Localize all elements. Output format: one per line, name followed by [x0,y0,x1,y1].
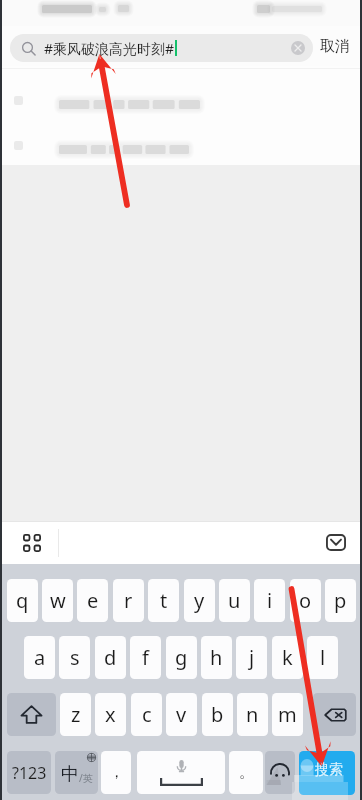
staticText: r [124,587,133,614]
staticText: h [210,644,223,671]
button[interactable]: v [166,693,197,736]
button[interactable]: b [202,693,233,736]
button[interactable]: j [236,636,267,679]
staticText: q [16,587,29,614]
staticText: v [176,701,187,728]
button[interactable]: y [184,579,215,622]
button[interactable]: 取消 [317,26,362,66]
button[interactable]: ?123 [7,751,51,794]
button[interactable]: x [95,693,126,736]
button[interactable]: p [325,579,356,622]
button[interactable]: 。 [229,751,263,794]
staticText: p [334,587,347,614]
staticText: d [104,644,117,671]
staticText: z [71,701,81,728]
staticText: b [211,701,224,728]
staticText: #乘风破浪高光时刻# [44,39,175,58]
staticText: i [267,587,273,614]
button[interactable]: a [24,636,55,679]
button[interactable]: i [254,579,285,622]
button[interactable]: f [130,636,161,679]
button[interactable]: Clear text [291,41,305,55]
staticText: n [246,701,259,728]
staticText: a [34,644,46,671]
staticText: y [194,587,205,614]
staticText: ， [109,763,124,782]
staticText: s [70,644,80,671]
button[interactable]: s [59,636,90,679]
button[interactable]: ， [101,751,131,794]
button[interactable]: Keyboard panels [16,527,47,558]
button[interactable]: Shift [7,693,56,736]
staticText: j [249,644,255,671]
staticText: l [320,644,326,671]
staticText: 取消 [320,37,350,56]
button[interactable]: o [290,579,321,622]
button[interactable]: Backspace [313,693,356,736]
button[interactable]: u [219,579,250,622]
button[interactable]: r [113,579,144,622]
button[interactable]: t [148,579,179,622]
staticText: t [160,587,168,614]
button[interactable]: c [131,693,162,736]
button[interactable]: m [272,693,303,736]
staticText: 搜索 [315,761,343,779]
staticText: u [228,587,241,614]
button[interactable]: e [77,579,108,622]
staticText: w [50,587,66,614]
button[interactable]: n [237,693,268,736]
button[interactable]: k [272,636,303,679]
staticText: 中 [61,763,79,786]
staticText: 。 [239,763,254,782]
button[interactable]: 搜索 [299,751,355,795]
staticText: c [142,701,152,728]
button[interactable]: h [201,636,232,679]
button[interactable]: Space [137,751,225,794]
staticText: x [105,701,116,728]
staticText: g [175,644,188,671]
staticText: o [299,587,312,614]
staticText: ?123 [12,762,47,784]
button[interactable]: Emoji [265,751,295,794]
button[interactable] [0,131,362,161]
staticText: /英 [79,771,93,785]
staticText: f [142,644,149,671]
staticText: m [278,701,297,728]
button[interactable]: 中 [55,751,98,794]
button[interactable]: d [95,636,126,679]
button[interactable]: #乘风破浪高光时刻# [10,34,313,62]
button[interactable]: z [60,693,91,736]
button[interactable] [0,86,362,116]
button[interactable]: Hide keyboard [320,527,351,558]
staticText: k [282,644,293,671]
button[interactable]: l [307,636,338,679]
button[interactable]: g [166,636,197,679]
button[interactable]: q [7,579,38,622]
staticText: e [87,587,99,614]
button[interactable]: w [42,579,73,622]
